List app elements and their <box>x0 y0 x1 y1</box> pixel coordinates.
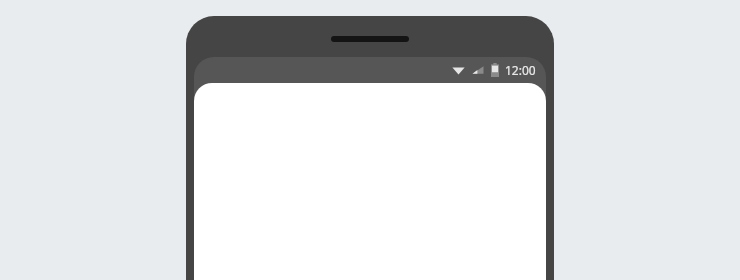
button[interactable]: Mobile signal <box>472 64 484 76</box>
button[interactable]: Battery <box>491 63 499 77</box>
button[interactable]: Wi-Fi signal <box>452 64 465 77</box>
staticText: 12:00 <box>505 62 536 78</box>
